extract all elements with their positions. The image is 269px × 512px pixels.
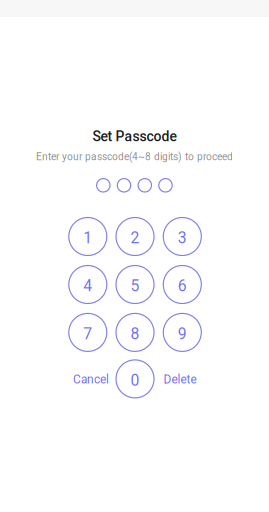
button[interactable]: Cancel [69, 360, 113, 398]
staticText: 2 [130, 229, 139, 247]
button[interactable]: Delete [158, 360, 202, 398]
button[interactable]: 2 [116, 217, 154, 255]
button[interactable]: 3 [163, 217, 201, 255]
staticText: 6 [178, 277, 187, 295]
staticText: 1 [83, 229, 92, 247]
staticText: 4 [83, 277, 92, 295]
button[interactable]: 7 [69, 313, 107, 351]
staticText: Enter your passcode(4~8 digits) to proce… [36, 151, 233, 163]
button[interactable]: 1 [69, 217, 107, 255]
staticText: Set Passcode [92, 128, 176, 145]
button[interactable]: 9 [163, 313, 201, 351]
staticText: 0 [130, 371, 139, 389]
button[interactable]: 6 [163, 265, 201, 303]
button[interactable]: 8 [116, 313, 154, 351]
button[interactable]: 4 [69, 265, 107, 303]
staticText: Cancel [73, 372, 109, 386]
staticText: 8 [130, 325, 139, 343]
staticText: 3 [178, 229, 187, 247]
staticText: 7 [83, 325, 92, 343]
staticText: 5 [130, 277, 139, 295]
staticText: 9 [178, 325, 187, 343]
staticText: Delete [163, 372, 196, 386]
button[interactable]: 0 [116, 360, 154, 398]
button[interactable]: 5 [116, 265, 154, 303]
